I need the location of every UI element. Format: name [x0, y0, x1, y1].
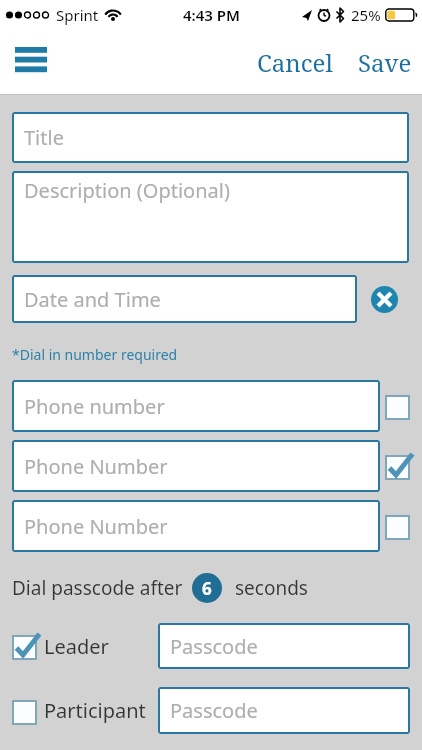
button[interactable]: Passcode: [158, 623, 410, 669]
staticText: Description (Optional): [24, 177, 230, 204]
button[interactable]: Description (Optional): [12, 171, 409, 263]
staticText: 25%: [351, 5, 381, 25]
button[interactable]: [15, 47, 47, 73]
button[interactable]: Date and Time: [12, 275, 357, 323]
button[interactable]: Phone number: [12, 380, 380, 432]
staticText: 6: [202, 577, 212, 600]
staticText: Title: [24, 124, 64, 151]
button[interactable]: 6: [192, 573, 222, 603]
button[interactable]: [12, 697, 40, 725]
staticText: Phone Number: [24, 513, 168, 540]
button[interactable]: [385, 392, 413, 420]
staticText: Dial passcode after: [12, 575, 183, 601]
staticText: seconds: [235, 575, 308, 601]
button[interactable]: [371, 286, 398, 313]
staticText: Cancel: [257, 46, 333, 79]
staticText: Date and Time: [24, 286, 161, 313]
staticText: Phone Number: [24, 453, 168, 480]
button[interactable]: Phone Number: [12, 440, 380, 492]
staticText: Save: [358, 46, 412, 79]
button[interactable]: Cancel: [257, 46, 333, 79]
staticText: Passcode: [170, 633, 258, 660]
button[interactable]: Passcode: [158, 687, 410, 734]
button[interactable]: [12, 632, 40, 660]
staticText: Sprint: [56, 5, 99, 25]
button[interactable]: Phone Number: [12, 500, 380, 552]
staticText: Participant: [44, 697, 146, 724]
staticText: Phone number: [24, 393, 165, 420]
button[interactable]: Title: [12, 112, 409, 163]
button[interactable]: Save: [358, 46, 412, 79]
button[interactable]: [385, 452, 413, 480]
staticText: Leader: [44, 633, 109, 660]
button[interactable]: [385, 512, 413, 540]
staticText: *Dial in number required: [12, 345, 178, 364]
staticText: 4:43 PM: [183, 5, 240, 25]
staticText: Passcode: [170, 697, 258, 724]
